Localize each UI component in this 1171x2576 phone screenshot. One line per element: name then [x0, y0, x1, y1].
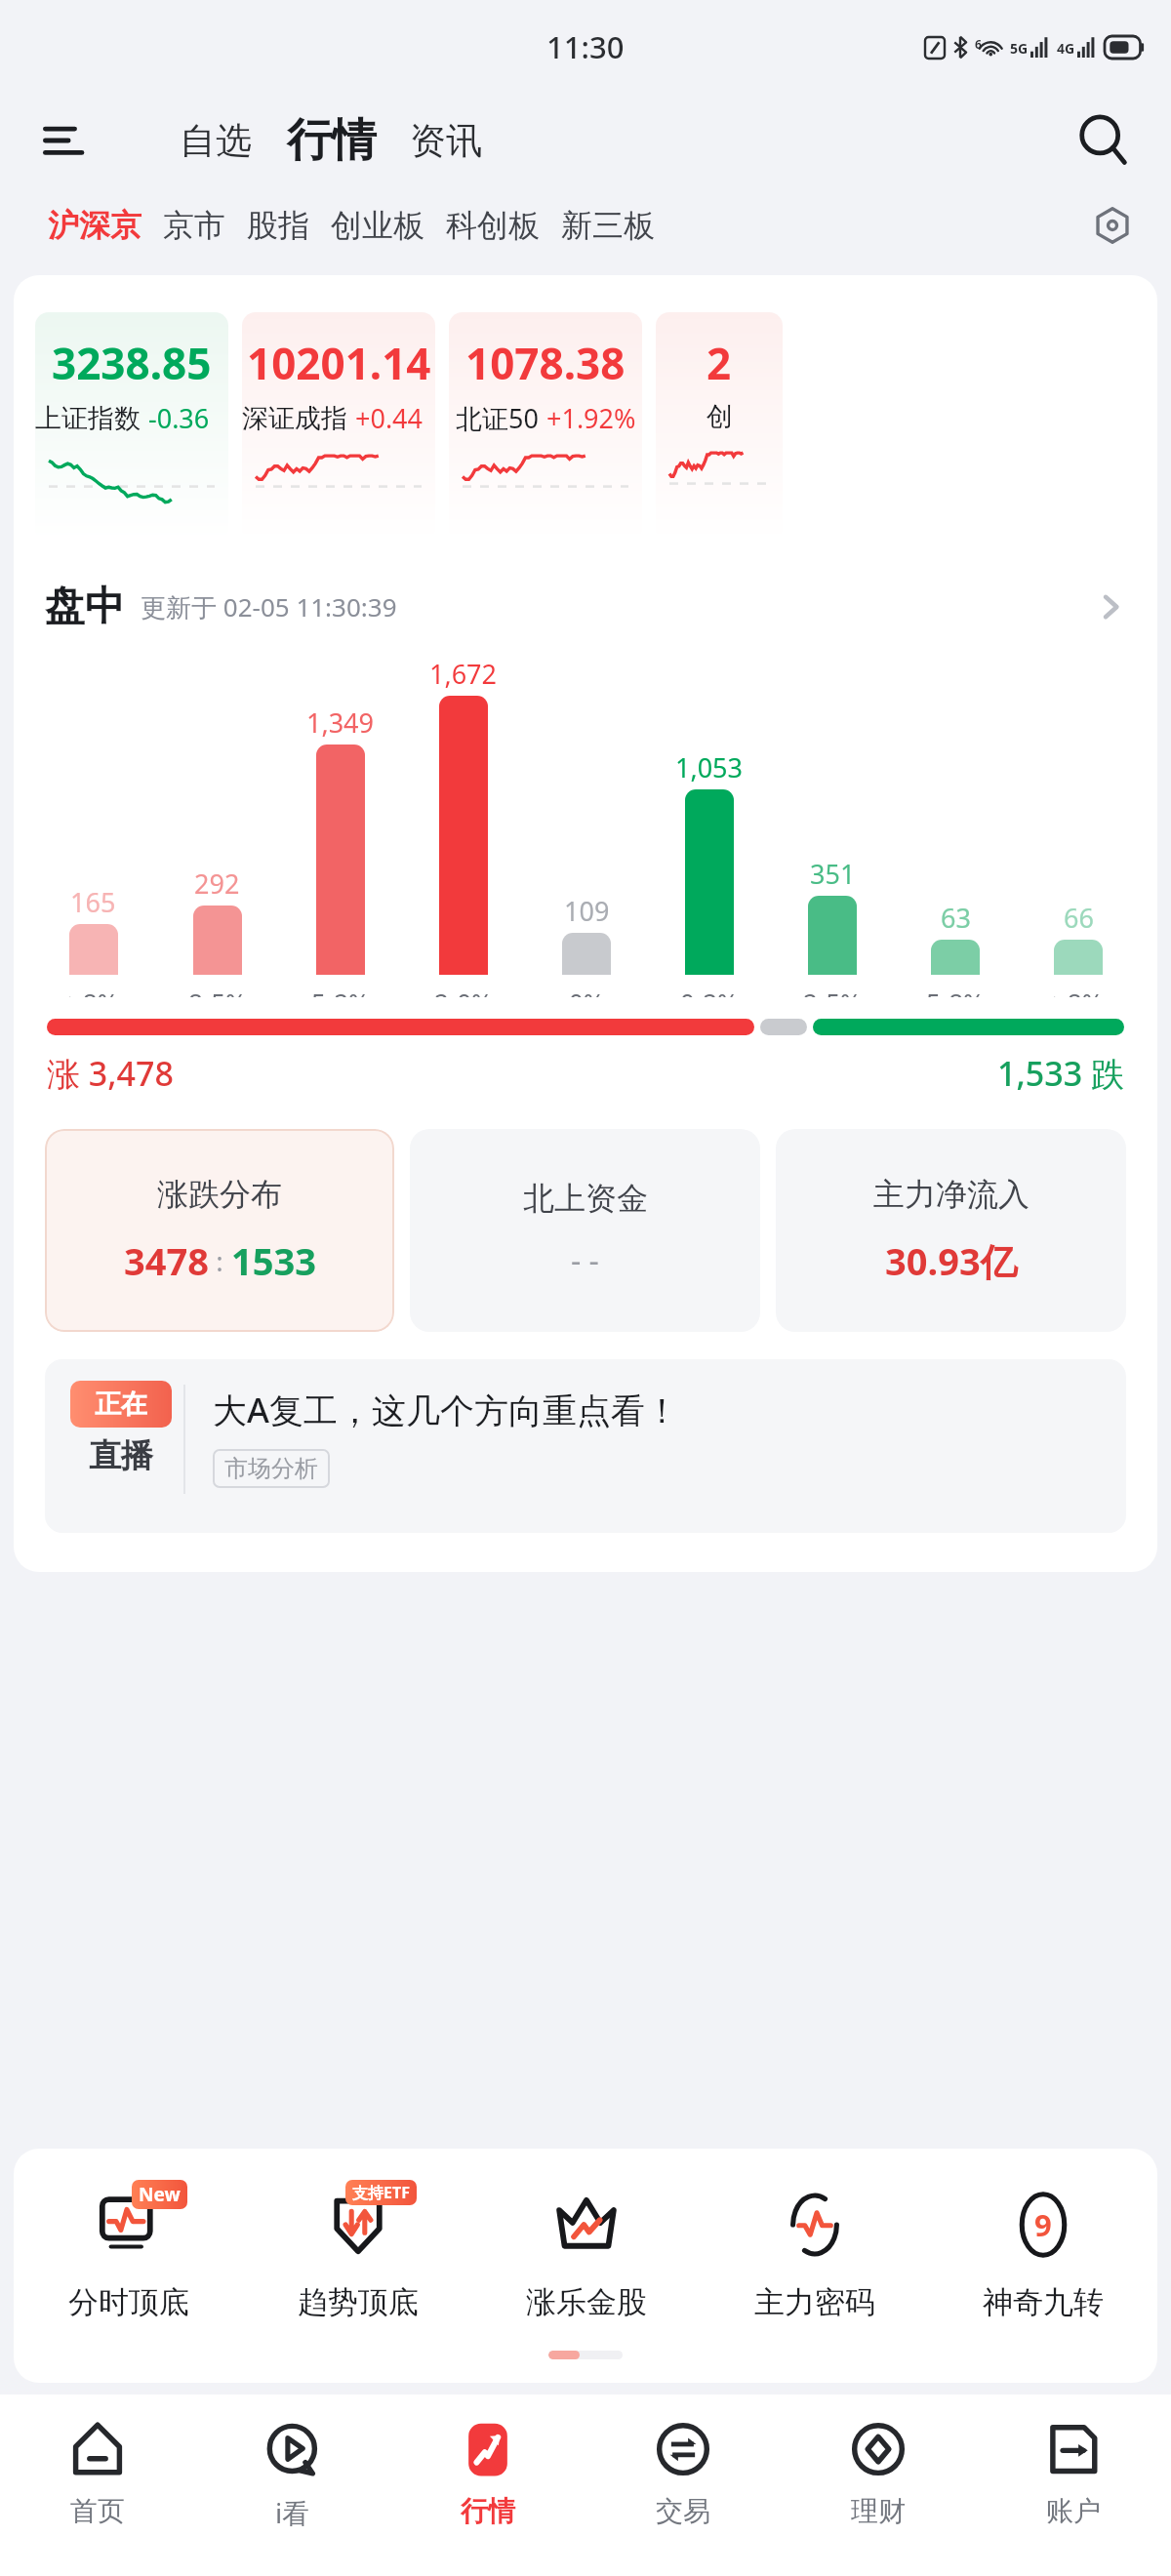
staticText: 主力密码	[754, 2283, 875, 2321]
staticText: 2-5%	[803, 985, 862, 997]
staticText: 2-0%	[434, 985, 493, 997]
button[interactable]: New	[14, 2178, 243, 2321]
staticText: 主力净流入	[873, 1175, 1030, 1214]
staticText: 支持ETF	[352, 2182, 410, 2203]
button[interactable]: 资讯	[402, 110, 490, 172]
button[interactable]: 京市	[152, 198, 236, 253]
staticText: 正在	[95, 1388, 147, 1421]
staticText: 趋势顶底	[298, 2283, 419, 2321]
staticText: 4G	[1057, 39, 1075, 58]
button[interactable]: 自选	[172, 110, 260, 172]
button[interactable]: More markets	[1089, 202, 1136, 249]
staticText: 账户	[1046, 2494, 1101, 2528]
staticText: 股指	[247, 206, 309, 245]
staticText: i看	[275, 2494, 310, 2531]
button[interactable]: 科创板	[435, 198, 550, 253]
staticText: 1,533 跌	[997, 1051, 1124, 1096]
staticText: >8%	[1053, 985, 1104, 997]
staticText: 新三板	[561, 206, 655, 245]
staticText: +1.92%	[546, 400, 636, 436]
staticText: 66	[1064, 900, 1094, 936]
staticText: 11:30	[546, 26, 625, 67]
staticText: 3478	[124, 1235, 209, 1286]
staticText: 30.93亿	[885, 1235, 1018, 1286]
staticText: 分时顶底	[68, 2283, 189, 2321]
button[interactable]: 理财	[781, 2395, 976, 2576]
staticText: 0%	[569, 985, 605, 997]
staticText: 上证指数	[35, 402, 141, 435]
staticText: 创	[707, 400, 733, 433]
staticText: 自选	[180, 118, 252, 164]
staticText: 市场分析	[224, 1454, 318, 1483]
button[interactable]: i看	[195, 2395, 390, 2576]
button[interactable]: 1078.38	[449, 312, 642, 541]
staticText: 109	[564, 893, 610, 929]
button[interactable]: 2	[656, 312, 783, 541]
staticText: 5G	[1010, 39, 1029, 58]
button[interactable]: 创业板	[320, 198, 435, 253]
staticText: 涨乐金股	[526, 2283, 647, 2321]
button[interactable]: 正在	[45, 1359, 1126, 1533]
button[interactable]: 10201.14	[242, 312, 435, 541]
button[interactable]: 9	[929, 2178, 1157, 2321]
staticText: 直播	[89, 1435, 153, 1476]
staticText: - -	[571, 1239, 599, 1282]
staticText: 沪深京	[48, 206, 141, 245]
button[interactable]: 股指	[236, 198, 320, 253]
staticText: 创业板	[331, 206, 424, 245]
button[interactable]: 主力净流入	[776, 1129, 1126, 1332]
staticText: New	[139, 2182, 181, 2207]
button[interactable]: 北上资金	[410, 1129, 760, 1332]
button[interactable]: 涨乐金股	[472, 2178, 701, 2321]
staticText: 北证50	[456, 400, 539, 436]
staticText: -0.36%	[148, 400, 228, 436]
staticText: 更新于 02-05 11:30:39	[141, 589, 397, 624]
staticText: 1,053	[675, 749, 744, 785]
staticText: 理财	[851, 2494, 906, 2528]
button[interactable]: 支持ETF	[243, 2178, 472, 2321]
staticText: 京市	[163, 206, 225, 245]
button[interactable]: Menu	[43, 118, 88, 163]
staticText: 科创板	[446, 206, 540, 245]
button[interactable]: 3238.85	[35, 312, 228, 541]
staticText: 9	[1034, 2204, 1052, 2245]
staticText: 行情	[461, 2494, 515, 2528]
staticText: 8-5%	[188, 985, 247, 997]
staticText: 涨 3,478	[47, 1051, 174, 1096]
button[interactable]: 账户	[976, 2395, 1171, 2576]
staticText: 1,349	[306, 704, 375, 741]
staticText: 1533	[231, 1235, 316, 1286]
staticText: 交易	[656, 2494, 710, 2528]
staticText: 1,672	[429, 656, 498, 692]
staticText: 292	[194, 865, 240, 902]
staticText: 涨跌分布	[157, 1175, 282, 1214]
button[interactable]: 行情	[390, 2395, 585, 2576]
button[interactable]: Search	[1075, 113, 1130, 168]
staticText: 2	[707, 334, 732, 392]
staticText: 1078.38	[465, 334, 626, 392]
staticText: >8%	[68, 985, 119, 997]
staticText: 行情	[287, 112, 377, 169]
staticText: 神奇九转	[983, 2283, 1104, 2321]
button[interactable]: 涨跌分布	[45, 1129, 394, 1332]
button[interactable]: 行情	[279, 104, 384, 177]
staticText: 5-2%	[311, 985, 370, 997]
button[interactable]: 新三板	[550, 198, 666, 253]
staticText: 6	[975, 36, 982, 52]
staticText: 北上资金	[523, 1179, 648, 1218]
button[interactable]: 交易	[585, 2395, 781, 2576]
staticText: 351	[810, 856, 856, 892]
staticText: 盘中	[45, 582, 125, 632]
staticText: 165	[70, 884, 116, 920]
button[interactable]: 沪深京	[37, 198, 152, 253]
button[interactable]: 首页	[0, 2395, 195, 2576]
staticText: 0-2%	[680, 985, 739, 997]
staticText: 深证成指	[242, 402, 347, 435]
staticText: 首页	[70, 2494, 125, 2528]
staticText: 10201.14	[247, 334, 431, 392]
staticText: 资讯	[410, 118, 482, 164]
staticText: :	[209, 1242, 231, 1279]
staticText: 大A复工，这几个方向重点看！	[213, 1387, 679, 1433]
button[interactable]: 主力密码	[701, 2178, 929, 2321]
button[interactable]: 盘中	[45, 582, 1126, 632]
